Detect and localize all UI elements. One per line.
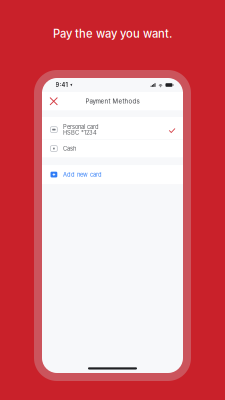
staticText: HSBC *1234: [63, 129, 97, 136]
staticText: Personal card: [63, 123, 99, 130]
staticText: Pay the way you want.: [53, 27, 172, 41]
button[interactable]: Add new card: [42, 165, 183, 184]
button[interactable]: Personal card: [42, 117, 183, 139]
staticText: Cash: [63, 145, 76, 152]
staticText: Payment Methods: [85, 97, 139, 105]
button[interactable]: Cash: [42, 140, 183, 158]
staticText: Add new card: [63, 171, 102, 178]
button[interactable]: Close: [46, 93, 61, 109]
staticText: 9:41: [55, 81, 67, 88]
